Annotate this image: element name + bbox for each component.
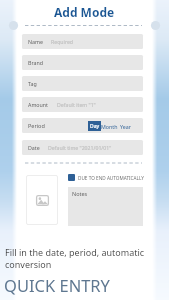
- staticText: Amount: [28, 101, 49, 108]
- staticText: Period: [28, 122, 45, 129]
- staticText: Brand: [28, 59, 44, 66]
- button[interactable]: Month: [101, 121, 118, 131]
- staticText: Required: [51, 38, 74, 45]
- button[interactable]: Amount: [22, 97, 143, 112]
- staticText: Name: [28, 38, 43, 45]
- staticText: QUICK ENTRY: [4, 274, 110, 296]
- staticText: Default item "1": [57, 101, 96, 108]
- button[interactable]: Notes: [68, 187, 143, 226]
- button[interactable]: Year: [118, 121, 133, 131]
- button[interactable]: Add photo: [26, 175, 58, 225]
- button[interactable]: Day: [88, 121, 101, 131]
- staticText: Default time "2021/01/01": [48, 144, 112, 151]
- button[interactable]: Brand: [22, 55, 143, 70]
- staticText: Date: [28, 144, 40, 151]
- button[interactable]: DUE TO END AUTOMATICALLY: [68, 173, 144, 182]
- button[interactable]: Name: [22, 34, 143, 49]
- staticText: Tag: [28, 80, 37, 87]
- button[interactable]: Date: [22, 140, 143, 155]
- staticText: Add Mode: [54, 4, 115, 20]
- staticText: Day: [90, 123, 100, 130]
- staticText: Year: [120, 123, 131, 130]
- staticText: Month: [101, 123, 118, 130]
- staticText: DUE TO END AUTOMATICALLY: [78, 175, 144, 181]
- staticText: Fill in the date, period, automatic conv…: [5, 246, 155, 271]
- staticText: Notes: [72, 190, 88, 197]
- button[interactable]: Tag: [22, 76, 143, 91]
